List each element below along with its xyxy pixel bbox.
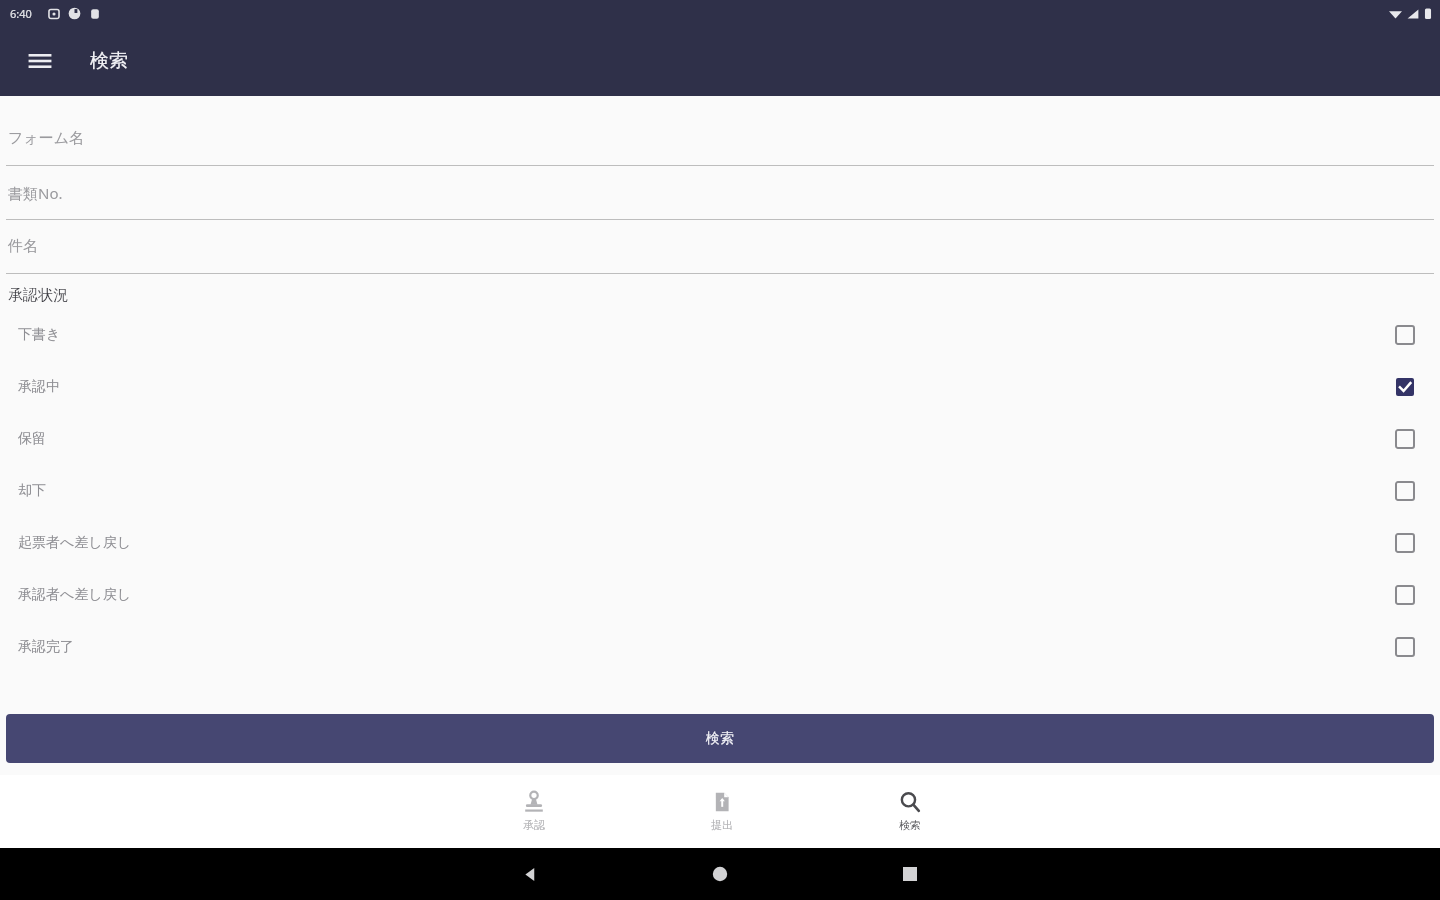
staticText: 承認状況: [8, 286, 68, 305]
staticText: 件名: [8, 237, 38, 256]
button[interactable]: 下書き: [0, 309, 1440, 361]
staticText: 承認中: [18, 378, 60, 396]
staticText: 下書き: [18, 326, 61, 344]
button[interactable]: 検索: [816, 775, 1004, 848]
button[interactable]: 承認者へ差し戻し: [0, 569, 1440, 621]
button[interactable]: フォーム名: [0, 112, 1440, 166]
staticText: フォーム名: [8, 129, 85, 148]
staticText: 検索: [90, 49, 128, 73]
staticText: 承認: [523, 818, 545, 832]
staticText: 却下: [18, 482, 46, 500]
button[interactable]: 承認中: [0, 361, 1440, 413]
button[interactable]: 承認完了: [0, 621, 1440, 673]
staticText: 検索: [706, 730, 734, 748]
staticText: 提出: [711, 818, 733, 832]
button[interactable]: 書類No.: [0, 166, 1440, 220]
staticText: 書類No.: [8, 183, 63, 203]
staticText: 6:40: [10, 6, 32, 21]
button[interactable]: Recent apps: [815, 848, 1005, 900]
button[interactable]: Back: [435, 848, 625, 900]
staticText: 承認者へ差し戻し: [18, 586, 131, 604]
button[interactable]: 提出: [628, 775, 816, 848]
button[interactable]: 却下: [0, 465, 1440, 517]
button[interactable]: 起票者へ差し戻し: [0, 517, 1440, 569]
button[interactable]: Home: [625, 848, 815, 900]
button[interactable]: 件名: [0, 220, 1440, 274]
button[interactable]: Menu: [14, 35, 66, 87]
button[interactable]: 検索: [6, 714, 1434, 763]
staticText: 保留: [18, 430, 46, 448]
staticText: 承認完了: [18, 638, 74, 656]
button[interactable]: 承認: [440, 775, 628, 848]
staticText: 検索: [899, 818, 921, 832]
staticText: 起票者へ差し戻し: [18, 534, 131, 552]
button[interactable]: 保留: [0, 413, 1440, 465]
